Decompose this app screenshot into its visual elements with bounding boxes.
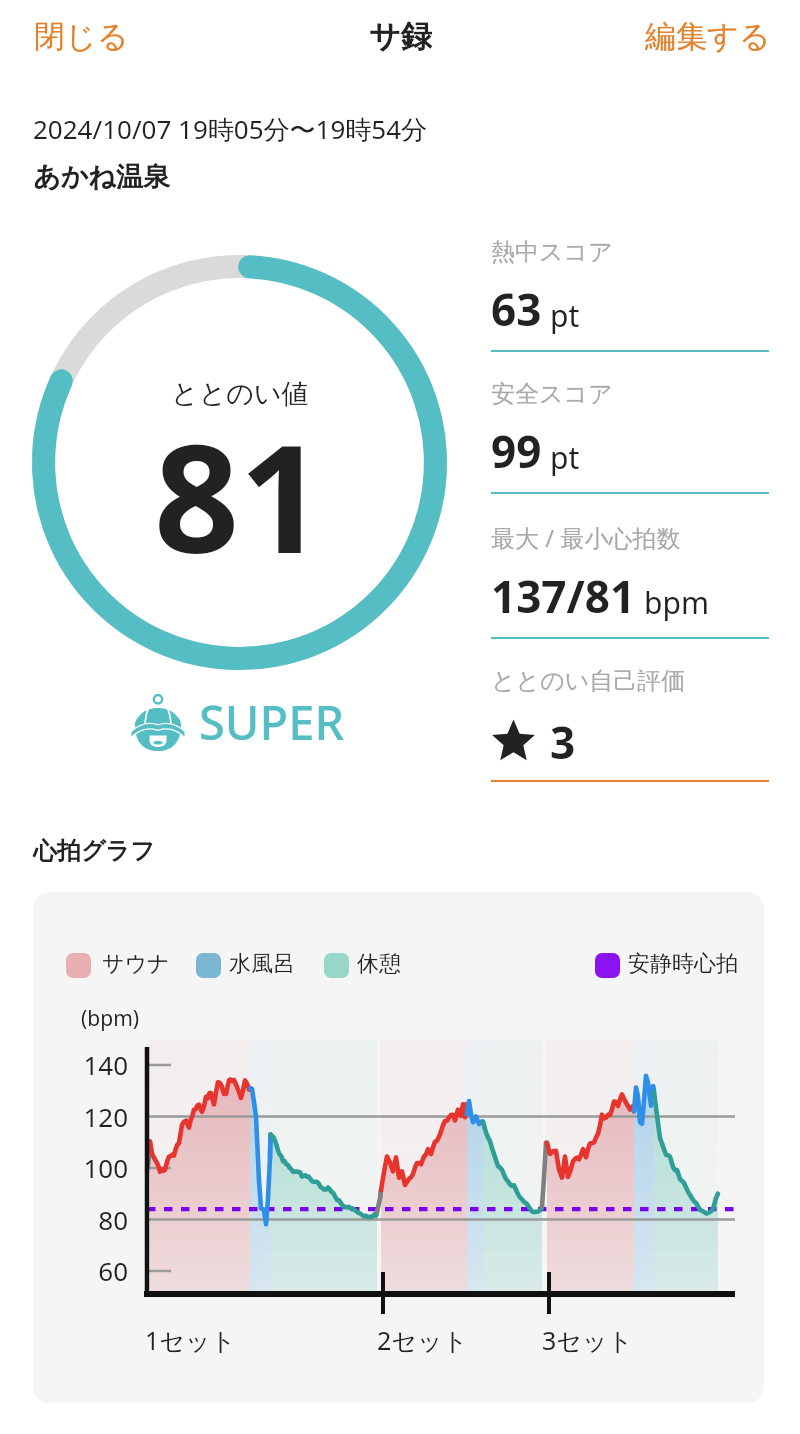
staticText: 99: [491, 421, 542, 481]
staticText: 安全スコア: [491, 379, 613, 409]
staticText: あかね温泉: [33, 160, 170, 194]
staticText: 水風呂: [229, 950, 295, 978]
staticText: 最大 / 最小心拍数: [491, 521, 681, 554]
button[interactable]: 閉じる: [0, 6, 163, 67]
button[interactable]: 編集する: [616, 6, 800, 67]
staticText: pt: [550, 295, 580, 336]
staticText: 63: [491, 279, 542, 339]
staticText: 80: [73, 1202, 128, 1237]
staticText: 編集する: [645, 17, 771, 56]
staticText: 100: [73, 1150, 128, 1185]
staticText: 熱中スコア: [491, 237, 613, 267]
staticText: 3セット: [542, 1323, 634, 1357]
staticText: ととのい自己評価: [491, 666, 686, 696]
staticText: サウナ: [102, 950, 170, 978]
staticText: SUPER: [199, 690, 345, 754]
staticText: サ録: [369, 17, 432, 56]
staticText: 閉じる: [34, 17, 129, 56]
staticText: ととのい値: [171, 377, 309, 411]
staticText: pt: [550, 437, 580, 478]
staticText: 3: [550, 712, 576, 772]
staticText: 休憩: [357, 950, 401, 978]
staticText: 2セット: [377, 1323, 469, 1357]
staticText: bpm: [644, 582, 709, 623]
staticText: 2024/10/07 19時05分〜19時54分: [33, 111, 428, 147]
staticText: 140: [73, 1047, 128, 1082]
staticText: 120: [73, 1099, 128, 1134]
staticText: 60: [73, 1253, 128, 1288]
staticText: 81: [154, 394, 325, 597]
staticText: (bpm): [81, 1004, 140, 1033]
staticText: 安静時心拍: [628, 950, 738, 978]
staticText: 137/81: [491, 566, 636, 626]
staticText: 心拍グラフ: [33, 836, 155, 866]
staticText: 1セット: [145, 1323, 237, 1357]
